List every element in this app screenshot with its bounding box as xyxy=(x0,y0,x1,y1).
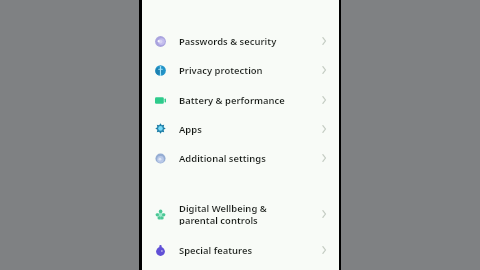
staticText: Battery & performance xyxy=(179,94,285,106)
staticText: Digital Wellbeing & parental controls xyxy=(179,202,267,225)
button[interactable] xyxy=(142,28,339,54)
staticText: Passwords & security xyxy=(179,35,277,47)
button[interactable] xyxy=(142,200,339,229)
staticText: Apps xyxy=(179,123,202,135)
button[interactable] xyxy=(142,116,339,142)
staticText: Special features xyxy=(179,244,253,256)
button[interactable] xyxy=(142,87,339,113)
button[interactable] xyxy=(142,57,339,83)
button[interactable] xyxy=(142,237,339,263)
staticText: Additional settings xyxy=(179,152,266,164)
staticText: Privacy protection xyxy=(179,64,263,76)
button[interactable] xyxy=(142,145,339,171)
